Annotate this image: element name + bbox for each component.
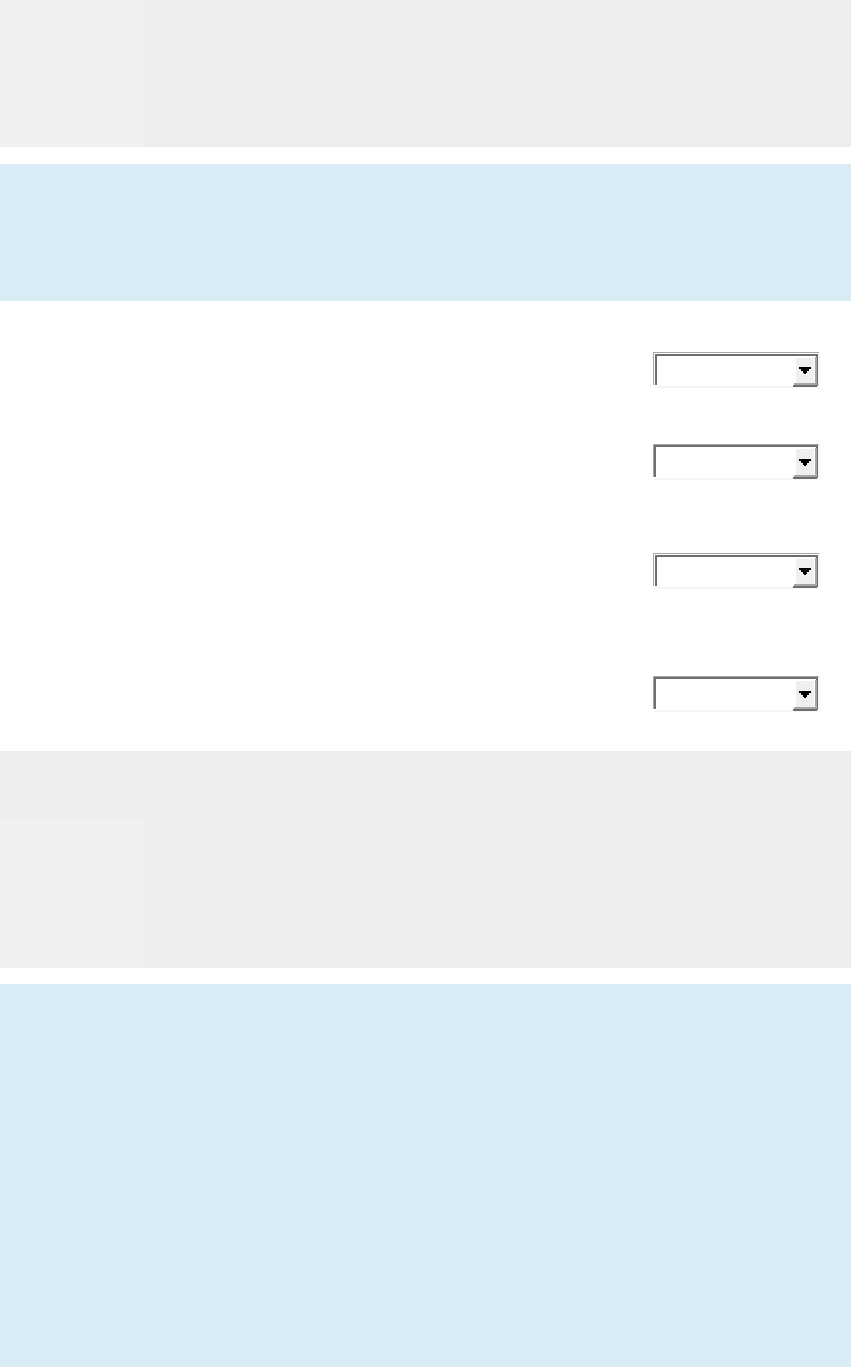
- button[interactable]: Open drop-down list: [653, 352, 820, 389]
- button[interactable]: Open drop-down list: [653, 444, 820, 481]
- button[interactable]: Open drop-down list: [653, 676, 820, 713]
- button[interactable]: Open drop-down list: [653, 553, 820, 590]
